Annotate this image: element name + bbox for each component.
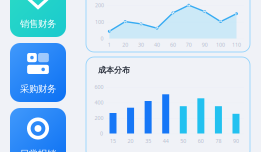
staticText: 0 — [100, 130, 103, 137]
staticText: 20 — [122, 41, 128, 48]
staticText: 78 — [215, 137, 221, 145]
staticText: 50 — [180, 137, 186, 145]
staticText: 70 — [186, 41, 192, 48]
staticText: 90 — [202, 41, 208, 48]
staticText: 15 — [110, 137, 116, 145]
staticText: 90 — [233, 137, 239, 145]
staticText: 44 — [163, 137, 169, 145]
staticText: 110 — [232, 41, 241, 48]
staticText: 35 — [145, 137, 151, 145]
staticText: 30 — [138, 41, 144, 48]
staticText: 日常报销 — [20, 148, 56, 152]
staticText: 60 — [170, 41, 176, 48]
staticText: 60 — [198, 137, 204, 145]
staticText: 销售财务 — [20, 18, 56, 30]
staticText: 成本分布 — [98, 65, 130, 75]
staticText: 200 — [94, 114, 103, 122]
staticText: 0 — [100, 35, 103, 42]
staticText: 1 — [108, 41, 111, 48]
staticText: 20 — [128, 137, 134, 145]
button[interactable]: 销售财务 — [10, 0, 66, 37]
staticText: 200 — [95, 2, 104, 9]
staticText: 100 — [216, 41, 225, 48]
staticText: 40 — [154, 41, 160, 48]
button[interactable]: 日常报销 — [10, 108, 66, 152]
staticText: 100 — [95, 18, 104, 25]
staticText: 600 — [94, 83, 103, 91]
staticText: 采购财务 — [20, 83, 56, 95]
staticText: 400 — [94, 99, 103, 106]
button[interactable]: 采购财务 — [10, 43, 66, 102]
